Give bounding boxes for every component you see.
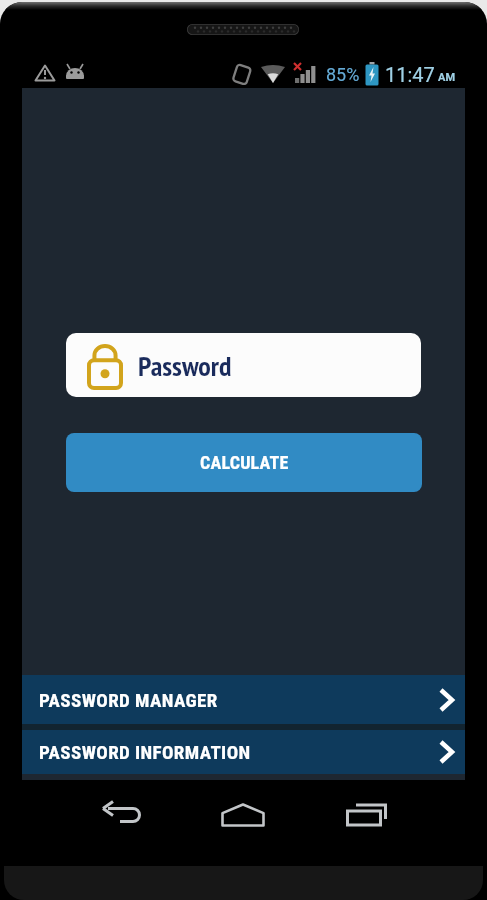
staticText: PASSWORD MANAGER — [39, 689, 218, 711]
button[interactable] — [221, 793, 265, 837]
button[interactable]: PASSWORD INFORMATION — [22, 730, 465, 774]
button[interactable]: Password — [66, 333, 421, 397]
staticText: CALCULATE — [200, 452, 289, 473]
staticText: AM — [438, 71, 456, 84]
button[interactable]: PASSWORD MANAGER — [22, 675, 465, 724]
button[interactable] — [345, 793, 389, 837]
staticText: 85% — [326, 64, 360, 85]
staticText: 11:47 — [385, 63, 435, 86]
button[interactable] — [98, 793, 142, 837]
staticText: PASSWORD INFORMATION — [39, 741, 251, 763]
staticText: Password — [138, 347, 232, 383]
button[interactable]: CALCULATE — [66, 433, 422, 492]
